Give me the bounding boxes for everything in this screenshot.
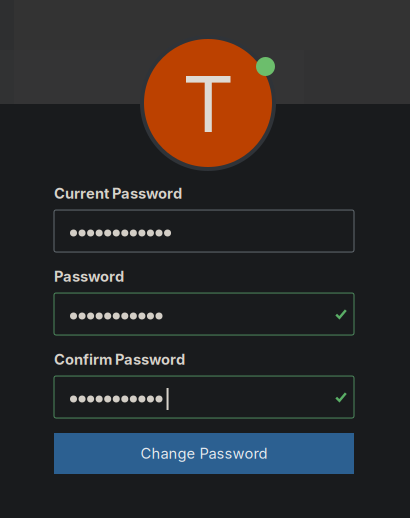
staticText: Confirm Password: [54, 351, 185, 368]
button[interactable]: Change Password: [54, 433, 354, 474]
staticText: Change Password: [140, 445, 267, 462]
staticText: Password: [54, 268, 124, 285]
staticText: Current Password: [54, 185, 182, 202]
